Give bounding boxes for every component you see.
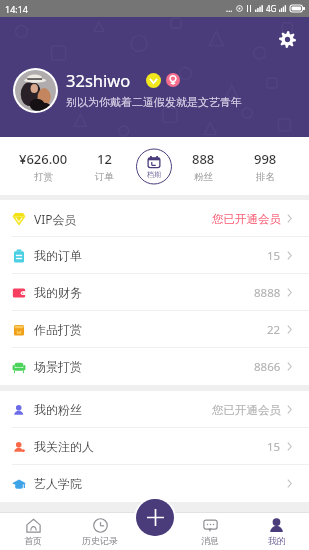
staticText: 我的 — [268, 535, 286, 546]
button[interactable]: ¥626.00 — [13, 150, 73, 183]
button[interactable]: 作品打赏 — [0, 311, 309, 348]
staticText: 艺人学院 — [34, 476, 82, 491]
button[interactable]: 12 — [73, 150, 136, 183]
staticText: 档期 — [147, 170, 161, 179]
staticText: 我的订单 — [34, 248, 82, 263]
button[interactable]: Add — [136, 499, 174, 536]
button[interactable]: 998 — [235, 150, 296, 183]
button[interactable]: 艺人学院 — [0, 465, 309, 502]
button[interactable]: 我的财务 — [0, 274, 309, 311]
staticText: ¥626.00 — [19, 150, 68, 168]
staticText: 粉丝 — [194, 171, 213, 183]
staticText: ... — [226, 3, 233, 14]
staticText: 场景打赏 — [34, 359, 82, 374]
staticText: 4G — [266, 3, 277, 14]
staticText: 888 — [192, 150, 215, 168]
staticText: 8866 — [254, 359, 281, 375]
staticText: VIP会员 — [34, 211, 77, 227]
staticText: 订单 — [95, 171, 114, 183]
staticText: 32shiwo — [66, 69, 131, 91]
button[interactable]: 我的粉丝 — [0, 391, 309, 428]
staticText: 14:14 — [5, 3, 29, 15]
button[interactable]: Avatar — [15, 70, 56, 111]
staticText: 15 — [267, 248, 281, 264]
button[interactable]: 档期 — [136, 147, 172, 186]
staticText: 我的粉丝 — [34, 402, 82, 417]
button[interactable]: 888 — [172, 150, 235, 183]
button[interactable]: 我的订单 — [0, 237, 309, 274]
staticText: 15 — [267, 439, 281, 455]
staticText: 打赏 — [34, 171, 53, 183]
staticText: 您已开通会员 — [212, 403, 281, 417]
button[interactable]: 我的 — [244, 513, 309, 550]
button[interactable]: 首页 — [0, 513, 66, 550]
button[interactable]: 消息 — [176, 513, 244, 550]
staticText: 您已开通会员 — [212, 212, 281, 226]
staticText: 我关注的人 — [34, 439, 94, 454]
staticText: 排名 — [256, 171, 275, 183]
button[interactable]: 场景打赏 — [0, 348, 309, 385]
staticText: 我的财务 — [34, 285, 82, 300]
staticText: 别以为你戴着二逼假发就是文艺青年 — [66, 95, 242, 109]
staticText: 8888 — [254, 285, 281, 301]
button[interactable]: 历史记录 — [66, 513, 134, 550]
staticText: 消息 — [201, 535, 219, 546]
staticText: 作品打赏 — [34, 322, 82, 337]
button[interactable]: 我关注的人 — [0, 428, 309, 465]
button[interactable]: Settings — [273, 25, 301, 53]
staticText: 22 — [267, 322, 281, 338]
staticText: 历史记录 — [82, 535, 118, 546]
staticText: 首页 — [24, 535, 42, 546]
button[interactable]: VIP会员 — [0, 200, 309, 237]
staticText: 998 — [254, 150, 277, 168]
staticText: 12 — [97, 150, 112, 168]
